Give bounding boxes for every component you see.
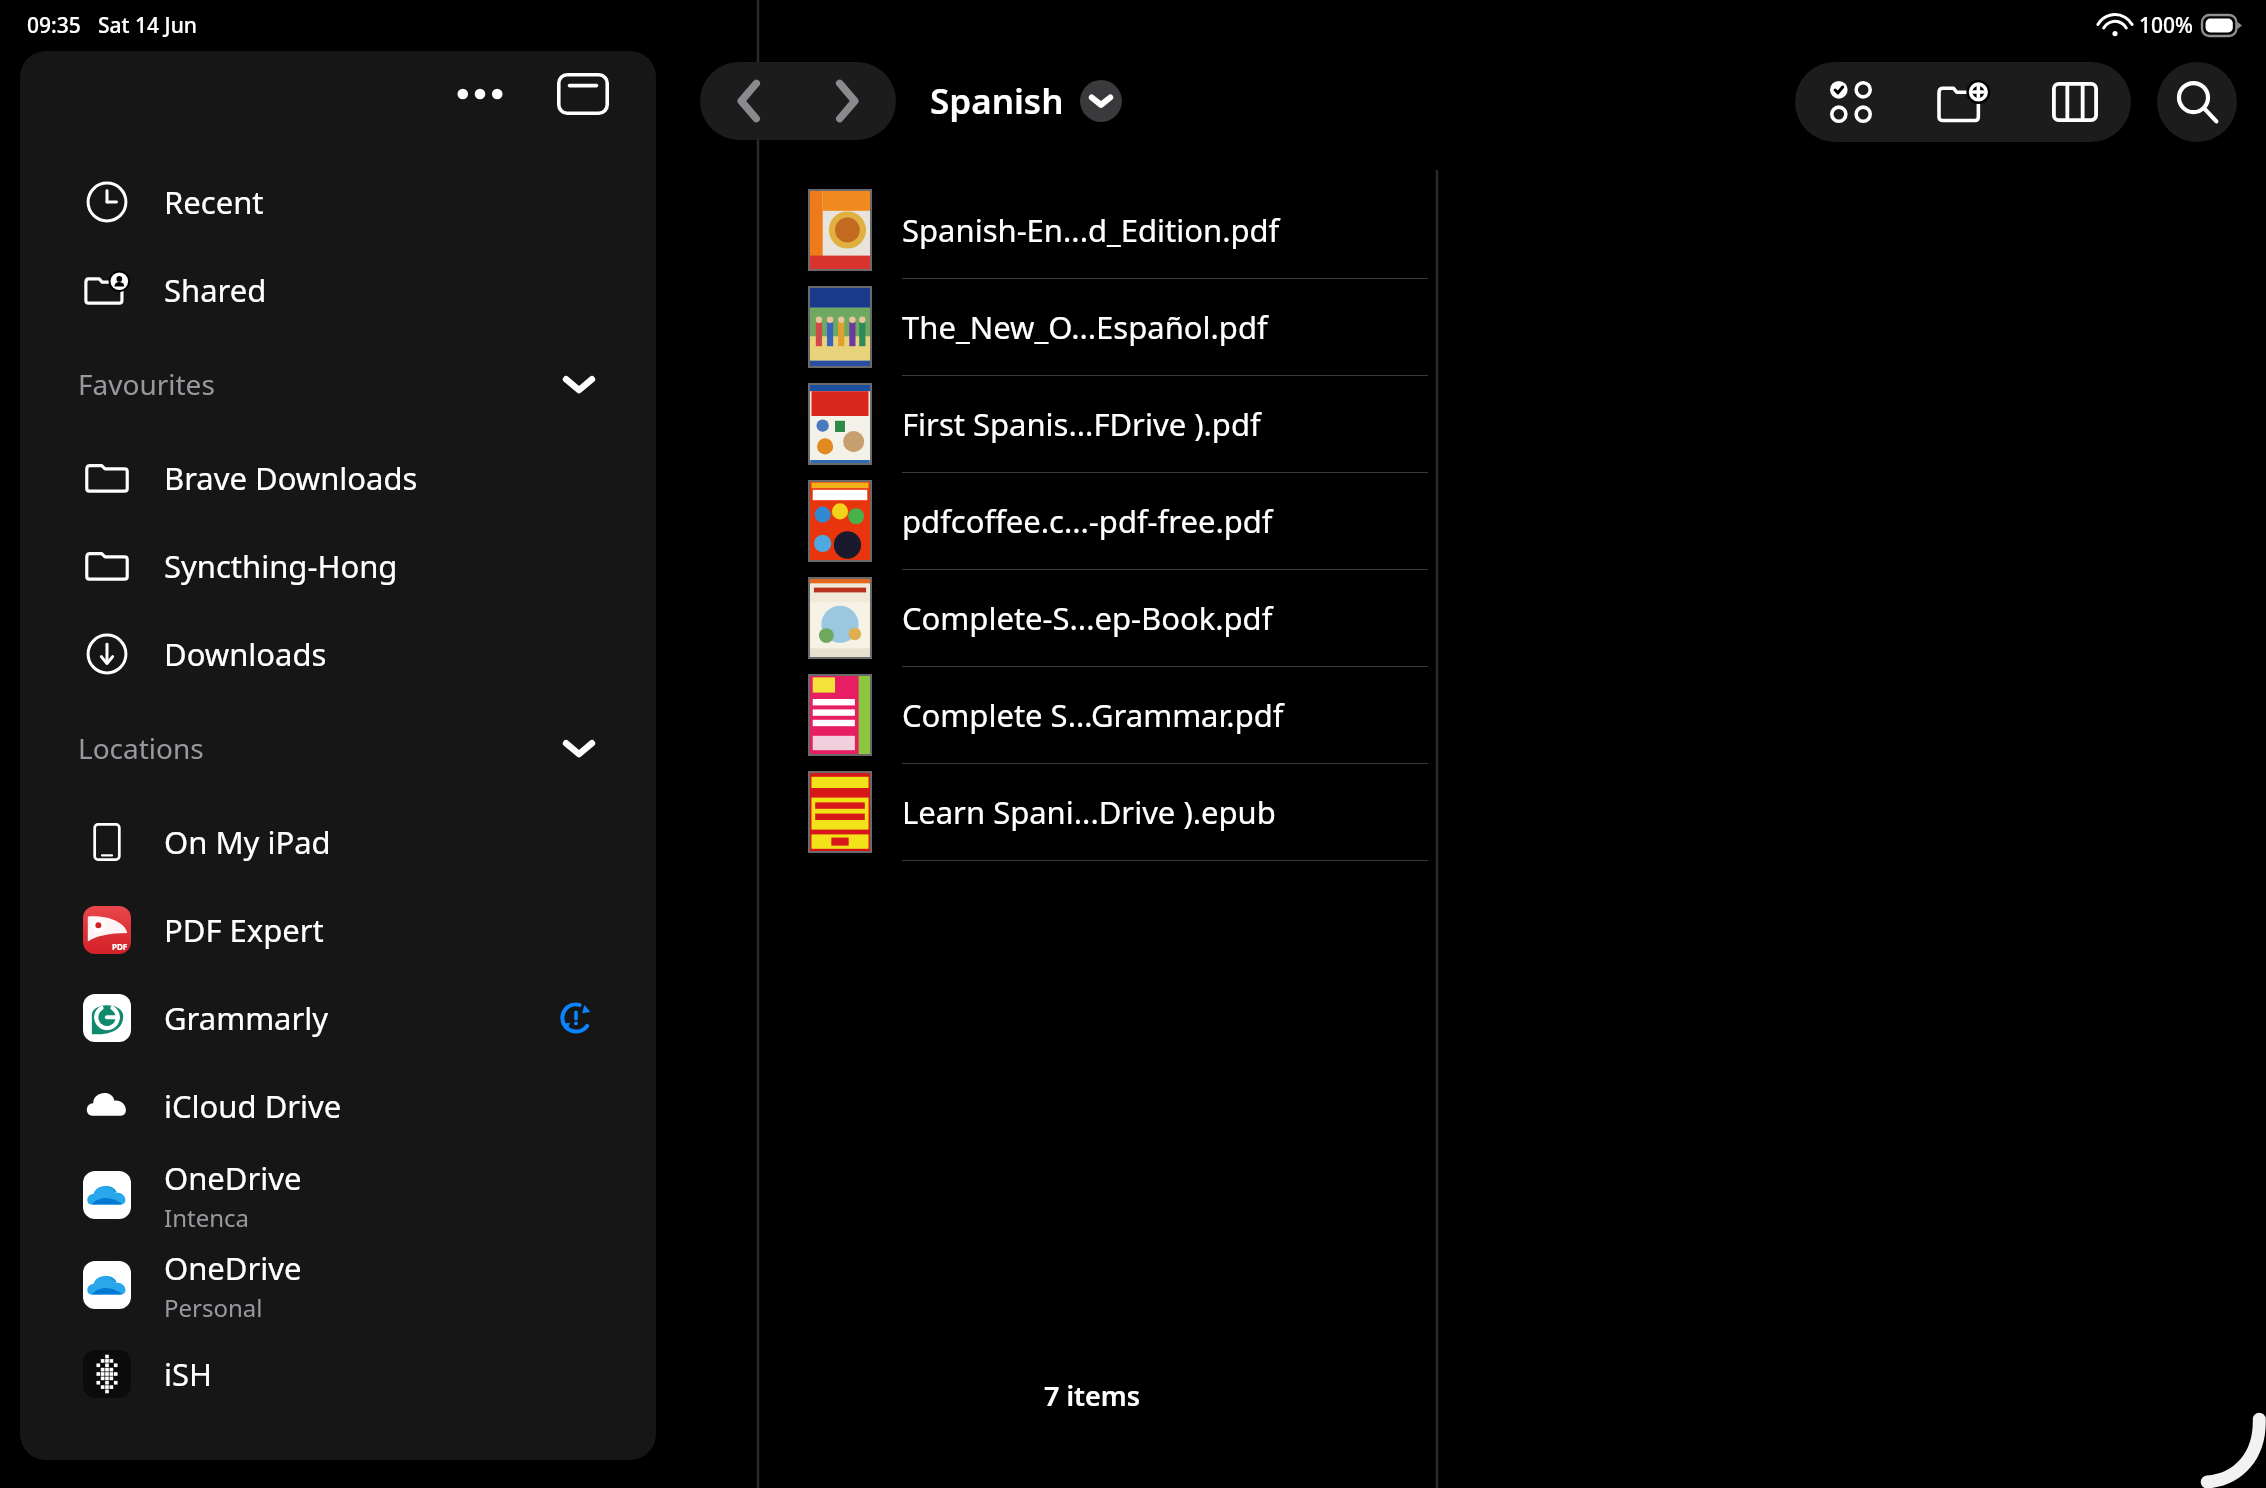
button[interactable]: Toggle sidebar	[548, 61, 618, 127]
staticText: Locations	[78, 729, 204, 767]
staticText: 09:35	[27, 11, 81, 40]
staticText: Personal	[164, 1291, 263, 1324]
staticText: OneDrive	[164, 1247, 302, 1289]
staticText: Spanish-En...d_Edition.pdf	[902, 209, 1280, 251]
button[interactable]: Search	[2157, 62, 2237, 142]
staticText: Syncthing-Hong	[164, 545, 398, 587]
button[interactable]: The_New_O...Español.pdf	[808, 279, 1428, 376]
staticText: 7 items	[1044, 1377, 1141, 1414]
button[interactable]: New Folder	[1907, 62, 2019, 142]
button[interactable]: Syncthing-Hong	[20, 522, 656, 610]
button[interactable]: Select	[1795, 62, 1907, 142]
staticText: iSH	[164, 1353, 212, 1395]
button[interactable]: Favourites	[20, 334, 656, 434]
staticText: 100%	[2139, 11, 2193, 40]
staticText: PDF	[112, 941, 128, 952]
button[interactable]: Complete S...Grammar.pdf	[808, 667, 1428, 764]
staticText: Complete S...Grammar.pdf	[902, 694, 1284, 736]
staticText: Downloads	[164, 633, 327, 675]
button[interactable]: Locations	[20, 698, 656, 798]
staticText: Complete-S...ep-Book.pdf	[902, 597, 1273, 639]
button[interactable]: iCloud Drive	[20, 1062, 656, 1150]
button[interactable]: First Spanis...FDrive ).pdf	[808, 376, 1428, 473]
button[interactable]: More options	[444, 63, 516, 125]
button[interactable]: Forward	[798, 62, 896, 140]
button[interactable]: Recent	[20, 158, 656, 246]
staticText: Grammarly	[164, 997, 329, 1039]
button[interactable]: Learn Spani...Drive ).epub	[808, 764, 1428, 861]
staticText: pdfcoffee.c...-pdf-free.pdf	[902, 500, 1273, 542]
staticText: Spanish	[930, 77, 1064, 125]
button[interactable]: Spanish	[930, 77, 1122, 125]
button[interactable]: OneDrive	[20, 1150, 656, 1240]
staticText: First Spanis...FDrive ).pdf	[902, 403, 1261, 445]
button[interactable]: Grammarly	[20, 974, 656, 1062]
button[interactable]: iSH	[20, 1330, 656, 1418]
staticText: PDF Expert	[164, 909, 324, 951]
button[interactable]: Spanish-En...d_Edition.pdf	[808, 182, 1428, 279]
button[interactable]: Brave Downloads	[20, 434, 656, 522]
button[interactable]: Complete-S...ep-Book.pdf	[808, 570, 1428, 667]
button[interactable]: On My iPad	[20, 798, 656, 886]
button[interactable]: Shared	[20, 246, 656, 334]
staticText: Shared	[164, 269, 267, 311]
staticText: Recent	[164, 181, 264, 223]
button[interactable]: pdfcoffee.c...-pdf-free.pdf	[808, 473, 1428, 570]
button[interactable]: OneDrive	[20, 1240, 656, 1330]
staticText: Sat 14 Jun	[98, 11, 197, 40]
button[interactable]: Back	[700, 62, 798, 140]
staticText: Brave Downloads	[164, 457, 418, 499]
staticText: Learn Spani...Drive ).epub	[902, 791, 1276, 833]
staticText: OneDrive	[164, 1157, 302, 1199]
staticText: The_New_O...Español.pdf	[902, 306, 1268, 348]
button[interactable]: View options	[2019, 62, 2131, 142]
button[interactable]: PDF	[20, 886, 656, 974]
staticText: Intenca	[164, 1201, 249, 1234]
staticText: iCloud Drive	[164, 1085, 342, 1127]
staticText: Favourites	[78, 365, 215, 403]
staticText: On My iPad	[164, 821, 331, 863]
button[interactable]: Downloads	[20, 610, 656, 698]
